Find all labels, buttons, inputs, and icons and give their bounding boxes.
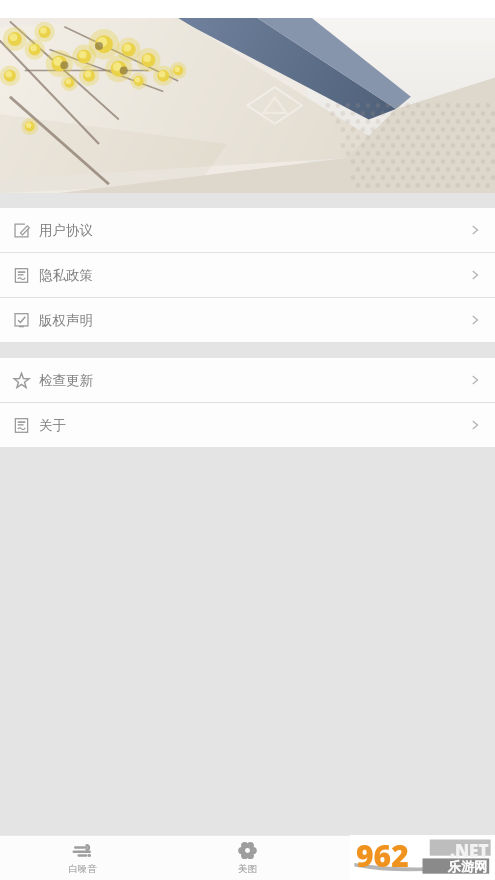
staticText: 隐私政策 [39,267,93,284]
staticText: 白噪音 [68,863,97,875]
button[interactable]: 版权声明 [0,298,495,342]
staticText: 树洞 [403,863,422,875]
staticText: 检查更新 [39,372,93,389]
staticText: 版权声明 [39,312,93,329]
staticText: 用户协议 [39,222,93,239]
button[interactable]: 关于 [0,403,495,447]
staticText: 关于 [39,417,66,434]
button[interactable]: 白噪音 [0,835,165,880]
button[interactable]: 隐私政策 [0,253,495,297]
button[interactable]: 用户协议 [0,208,495,252]
staticText: 乐游网 [448,858,487,874]
staticText: 美图 [238,863,257,875]
button[interactable]: 美图 [165,835,330,880]
staticText: 962 [356,835,409,872]
button[interactable]: 检查更新 [0,358,495,402]
staticText: .NET [450,839,489,862]
button[interactable]: 树洞 [330,835,495,880]
